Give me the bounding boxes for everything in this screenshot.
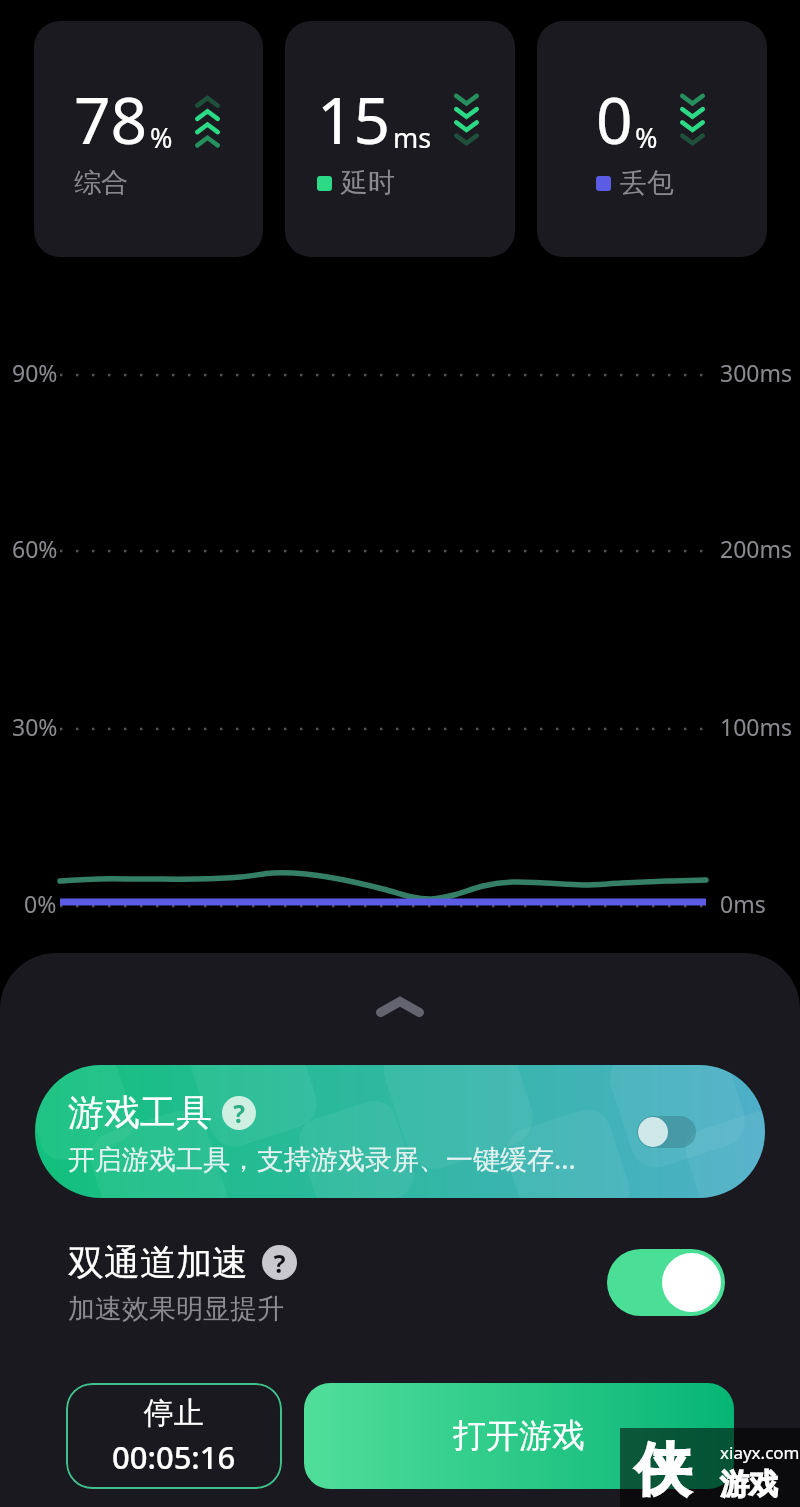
button[interactable]: Toggle dual channel acceleration <box>607 1249 725 1316</box>
staticText: 开启游戏工具，支持游戏录屏、一键缓存... <box>68 1140 576 1177</box>
staticText: ? <box>233 1097 245 1130</box>
staticText: 游戏 <box>720 1466 778 1503</box>
button[interactable]: 15 <box>285 21 515 257</box>
staticText: 100ms <box>720 711 792 742</box>
staticText: 15 <box>317 76 391 163</box>
staticText: 0% <box>24 888 57 919</box>
staticText: 打开游戏 <box>453 1415 585 1457</box>
button[interactable]: Collapse panel <box>0 953 800 1043</box>
button[interactable]: 打开游戏 <box>304 1383 734 1489</box>
staticText: % <box>150 119 173 156</box>
staticText: 0ms <box>720 888 766 919</box>
staticText: xiayx.com <box>720 1441 800 1464</box>
staticText: 78 <box>74 76 148 163</box>
button[interactable]: 78 <box>34 21 263 257</box>
staticText: 综合 <box>74 166 128 200</box>
button[interactable]: Toggle game tools <box>637 1116 696 1148</box>
staticText: 60% <box>12 533 58 564</box>
staticText: 侠 <box>635 1435 691 1506</box>
button[interactable]: 游戏工具 <box>35 1065 765 1198</box>
button[interactable]: 0 <box>537 21 767 257</box>
button[interactable]: 双通道加速 <box>0 1231 800 1319</box>
staticText: 延时 <box>341 166 395 200</box>
staticText: 30% <box>12 711 58 742</box>
staticText: 加速效果明显提升 <box>68 1292 284 1326</box>
button[interactable]: 停止 <box>66 1383 282 1489</box>
staticText: ? <box>273 1246 286 1280</box>
staticText: ms <box>393 119 432 156</box>
staticText: 90% <box>12 357 58 388</box>
staticText: 200ms <box>720 533 792 564</box>
staticText: % <box>635 119 658 156</box>
staticText: 300ms <box>720 357 792 388</box>
staticText: 00:05:16 <box>112 1436 236 1478</box>
staticText: 丢包 <box>620 166 674 200</box>
staticText: 0 <box>596 76 633 163</box>
staticText: 游戏工具 <box>68 1090 212 1135</box>
staticText: 双通道加速 <box>68 1240 248 1285</box>
staticText: 停止 <box>144 1394 204 1432</box>
